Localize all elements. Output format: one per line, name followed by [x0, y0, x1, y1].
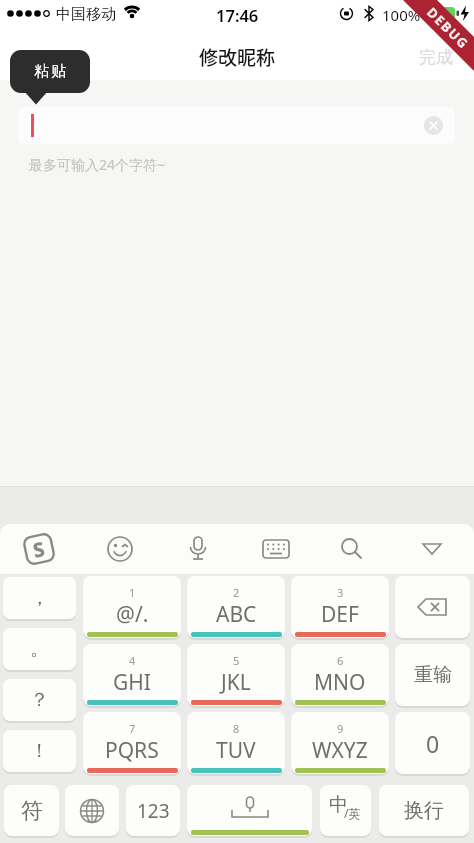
staticText: 100%: [382, 5, 421, 25]
button[interactable]: 换行: [379, 785, 469, 836]
staticText: MNO: [314, 668, 366, 697]
button[interactable]: [412, 529, 452, 569]
button[interactable]: S: [19, 529, 59, 569]
staticText: 3: [337, 585, 344, 600]
staticText: ABC: [216, 600, 257, 629]
staticText: 5: [233, 653, 240, 668]
staticText: DEF: [321, 600, 359, 629]
button[interactable]: [65, 785, 119, 836]
staticText: 4: [129, 653, 136, 668]
button[interactable]: [178, 529, 218, 569]
staticText: TUV: [216, 736, 256, 765]
staticText: 中国移动: [56, 5, 116, 24]
staticText: 6: [337, 653, 344, 668]
button[interactable]: 4: [83, 644, 181, 706]
button[interactable]: 6: [291, 644, 389, 706]
button[interactable]: 123: [126, 785, 180, 836]
staticText: 最多可输入24个字符~: [29, 155, 166, 174]
staticText: WXYZ: [312, 736, 368, 765]
staticText: DEBUG: [423, 3, 473, 53]
staticText: GHI: [113, 668, 151, 697]
button[interactable]: [333, 529, 373, 569]
staticText: 1: [129, 585, 136, 600]
staticText: @/.: [116, 600, 149, 629]
staticText: ？: [30, 688, 49, 712]
button[interactable]: [187, 785, 312, 836]
staticText: 。: [30, 637, 49, 661]
button[interactable]: 1: [83, 576, 181, 638]
staticText: 符: [21, 797, 43, 825]
button[interactable]: 。: [3, 628, 76, 670]
staticText: PQRS: [105, 736, 159, 765]
button[interactable]: 2: [187, 576, 285, 638]
button[interactable]: ，: [3, 577, 76, 619]
staticText: JKL: [221, 668, 251, 697]
staticText: 修改昵称: [199, 43, 276, 71]
staticText: ！: [30, 739, 49, 763]
staticText: 完成: [419, 47, 453, 68]
button[interactable]: 9: [291, 712, 389, 774]
button[interactable]: 中: [320, 785, 371, 836]
button[interactable]: [256, 529, 296, 569]
button[interactable]: 完成: [406, 42, 466, 72]
staticText: 17:46: [216, 4, 259, 24]
button[interactable]: 3: [291, 576, 389, 638]
staticText: 重输: [414, 663, 452, 687]
button[interactable]: [395, 576, 470, 638]
button[interactable]: 5: [187, 644, 285, 706]
button[interactable]: [100, 529, 140, 569]
staticText: S: [30, 535, 48, 564]
staticText: 8: [233, 721, 240, 736]
button[interactable]: 符: [4, 785, 59, 836]
staticText: 换行: [404, 798, 444, 823]
button[interactable]: 0: [395, 712, 470, 774]
button[interactable]: [424, 116, 443, 135]
button[interactable]: ？: [3, 679, 76, 721]
staticText: /英: [344, 805, 361, 821]
staticText: ，: [30, 586, 49, 610]
staticText: 0: [426, 728, 440, 759]
button[interactable]: [18, 107, 455, 144]
staticText: 2: [233, 585, 240, 600]
button[interactable]: ！: [3, 730, 76, 772]
button[interactable]: 7: [83, 712, 181, 774]
staticText: 7: [129, 721, 136, 736]
staticText: 粘贴: [33, 62, 67, 81]
staticText: 9: [337, 721, 344, 736]
button[interactable]: 粘贴: [10, 50, 90, 93]
staticText: 123: [137, 798, 170, 824]
staticText: 中: [329, 793, 348, 817]
button[interactable]: 8: [187, 712, 285, 774]
button[interactable]: 重输: [395, 644, 470, 706]
